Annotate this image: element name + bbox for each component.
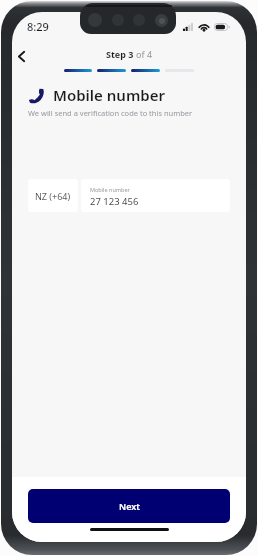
button[interactable]: Back xyxy=(12,47,31,66)
staticText: Mobile number xyxy=(53,85,165,105)
staticText: Mobile number xyxy=(90,186,130,193)
staticText: We will send a verification code to this… xyxy=(28,108,193,118)
staticText: Next xyxy=(119,500,140,512)
staticText: of 4 xyxy=(136,48,153,60)
staticText: 27 123 456 xyxy=(90,195,139,208)
button[interactable]: Mobile number xyxy=(81,179,230,212)
staticText: Step 3 xyxy=(106,48,136,60)
button[interactable]: Next xyxy=(28,489,230,523)
staticText: 8:29 xyxy=(27,19,49,34)
button[interactable]: NZ (+64) xyxy=(28,179,78,212)
staticText: NZ (+64) xyxy=(35,190,71,202)
